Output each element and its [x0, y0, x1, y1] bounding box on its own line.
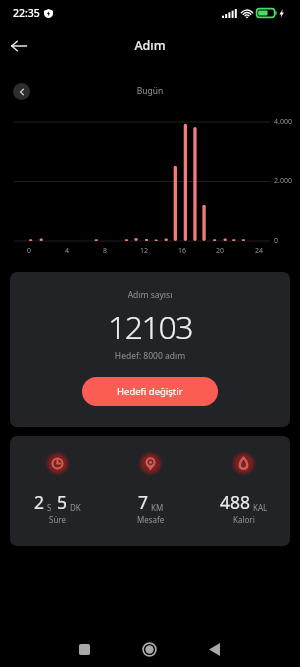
staticText: 24	[249, 246, 269, 256]
staticText: KM	[151, 502, 164, 513]
button[interactable]: 2	[10, 436, 104, 546]
staticText: 12103	[10, 305, 290, 349]
button[interactable]: 7	[104, 436, 197, 546]
staticText: Adım	[0, 37, 300, 54]
button[interactable]: Back	[4, 31, 34, 61]
staticText: 488	[220, 490, 251, 514]
staticText: Mesafe	[137, 514, 165, 525]
staticText: S	[47, 502, 52, 513]
button[interactable]: Home	[131, 631, 167, 667]
staticText: KAL	[253, 502, 268, 513]
staticText: DK	[70, 502, 81, 513]
staticText: 0	[19, 246, 39, 256]
staticText: Kalori	[233, 514, 255, 525]
staticText: Hedef: 8000 adım	[10, 350, 290, 362]
staticText: 4.000	[274, 117, 292, 127]
button[interactable]: Recents	[66, 631, 102, 667]
staticText: Bugün	[0, 85, 300, 97]
staticText: 4	[57, 246, 77, 256]
staticText: 0	[274, 236, 279, 246]
button[interactable]: Previous day	[13, 83, 30, 100]
staticText: 20	[210, 246, 230, 256]
button[interactable]: Hedefi değiştir	[82, 377, 218, 406]
button[interactable]: 488	[197, 436, 290, 546]
staticText: 7	[138, 490, 149, 514]
button[interactable]: Back	[196, 631, 232, 667]
staticText: 2.000	[274, 176, 292, 186]
staticText: 16	[172, 246, 192, 256]
staticText: 12	[134, 246, 154, 256]
staticText: Hedefi değiştir	[117, 385, 183, 398]
staticText: 5	[57, 490, 68, 514]
staticText: 2	[34, 490, 45, 514]
staticText: 8	[95, 246, 115, 256]
staticText: 22:35	[13, 6, 40, 20]
staticText: Adım sayısı	[10, 289, 290, 301]
staticText: Süre	[49, 514, 66, 525]
